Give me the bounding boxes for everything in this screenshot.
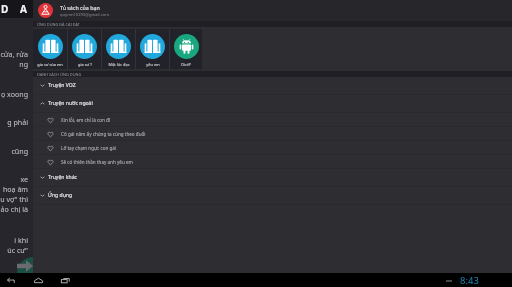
button[interactable]: Một lúc đọc (102, 29, 135, 69)
staticText: Lỡ tay chạm ngực con gái (61, 145, 117, 151)
staticText: Truyện nước ngoài (48, 100, 93, 107)
staticText: DictP (181, 62, 191, 67)
button[interactable]: Home (31, 273, 45, 287)
staticText: Sẽ có thiên thần thay anh yêu em (61, 159, 133, 165)
button[interactable]: DictP (170, 29, 202, 69)
staticText: DANH SÁCH ỨNG DỤNG (37, 72, 82, 77)
button[interactable]: Truyện nước ngoài (33, 95, 512, 112)
staticText: Một lúc đọc (108, 62, 130, 67)
staticText: Cô gái năm ấy chúng ta cùng theo đuổi (61, 131, 146, 137)
staticText: ng móng (0, 59, 28, 69)
staticText: cửa, rửa (0, 49, 28, 59)
staticText: yêu em (146, 62, 160, 67)
staticText: Truyện VOZ (48, 82, 76, 89)
staticText: Tủ sách của bạn (60, 4, 100, 11)
staticText: gia sư ? (78, 62, 92, 67)
staticText: ỨNG DỤNG ĐÃ CÀI ĐẶT (37, 22, 80, 27)
button[interactable]: Next chapter (17, 257, 50, 287)
staticText: D (1, 2, 9, 16)
button[interactable]: gia sư ? (68, 29, 101, 69)
staticText: úc cư" là (0, 245, 28, 255)
button[interactable]: yêu em (136, 29, 169, 69)
button[interactable]: Font size (17, 0, 29, 18)
staticText: Ứng dụng (48, 192, 73, 199)
staticText: g phải lo (0, 117, 28, 127)
button[interactable]: Back (4, 273, 18, 287)
button[interactable]: Xin lỗi, em chỉ là con đĩ (33, 113, 512, 126)
staticText: A (20, 2, 27, 16)
staticText: cũng vứt (0, 146, 28, 156)
button[interactable]: Day mode (0, 0, 10, 18)
button[interactable]: Ứng dụng (33, 187, 512, 204)
staticText: i khi ngủ (0, 235, 28, 245)
button[interactable]: gia sư của em (33, 29, 67, 69)
button[interactable]: Lỡ tay chạm ngực con gái (33, 141, 512, 154)
staticText: hoạ âm (0, 184, 28, 194)
staticText: ảo chị là (0, 204, 28, 214)
button[interactable]: Truyện VOZ (33, 77, 512, 94)
button[interactable]: Recent apps (58, 273, 72, 287)
button[interactable]: Truyện khác (33, 169, 512, 186)
staticText: quynm10293@gmail.com (60, 12, 110, 18)
staticText: Truyện khác (48, 174, 77, 181)
staticText: ọ xoong (0, 89, 28, 99)
staticText: gia sư của em (37, 62, 63, 67)
staticText: 8:43 (460, 274, 479, 287)
button[interactable]: Sẽ có thiên thần thay anh yêu em (33, 155, 512, 168)
staticText: Xin lỗi, em chỉ là con đĩ (61, 117, 110, 123)
button[interactable]: Cô gái năm ấy chúng ta cùng theo đuổi (33, 127, 512, 140)
staticText: u vợ" thì (0, 194, 28, 204)
button[interactable]: Tủ sách của bạn (33, 0, 512, 21)
staticText: xe online (0, 174, 28, 184)
